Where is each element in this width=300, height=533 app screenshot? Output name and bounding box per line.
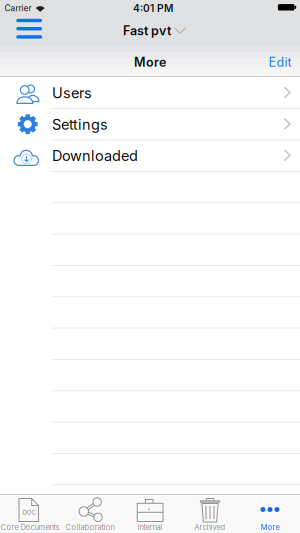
button[interactable]: Users: [0, 77, 300, 108]
staticText: Users: [52, 84, 92, 102]
button[interactable]: Settings: [0, 108, 300, 140]
staticText: More: [260, 523, 279, 532]
button[interactable]: Downloaded: [0, 140, 300, 171]
button[interactable]: Collaboration: [60, 495, 120, 533]
button[interactable]: Core Documents: [0, 495, 60, 533]
button[interactable]: More: [240, 495, 300, 533]
button[interactable]: Internal: [120, 495, 180, 533]
staticText: Settings: [52, 116, 108, 133]
staticText: Downloaded: [52, 147, 138, 164]
button[interactable]: Edit: [258, 49, 300, 75]
staticText: Internal: [137, 523, 162, 532]
staticText: Carrier: [4, 3, 31, 13]
button[interactable]: Archived: [180, 495, 240, 533]
staticText: DOC: [22, 509, 35, 516]
staticText: Fast pvt: [123, 23, 171, 38]
button[interactable]: Menu: [16, 19, 42, 39]
staticText: More: [134, 55, 166, 70]
staticText: Collaboration: [65, 523, 114, 532]
staticText: 4:01 PM: [133, 2, 173, 14]
staticText: Edit: [268, 55, 291, 70]
staticText: Core Documents: [0, 523, 59, 532]
button[interactable]: Fast pvt: [123, 23, 186, 38]
staticText: Archived: [194, 523, 225, 532]
